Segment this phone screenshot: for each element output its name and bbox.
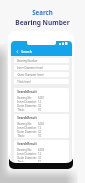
button[interactable]: Back [15,49,20,54]
staticText: 10 [38,108,41,112]
staticText: Bearing Number [15,18,70,27]
staticText: 32 [38,156,41,160]
staticText: Outer Diameter: [17,130,37,134]
staticText: 12 [38,126,41,130]
staticText: Outer Diameter: [17,156,37,160]
staticText: SearchResult [17,142,37,146]
staticText: Search [21,50,32,54]
staticText: 6203 [38,148,44,152]
staticText: Inner Diameter (mm) [17,66,43,70]
staticText: Bearing No: [17,96,32,100]
staticText: 6201 [38,96,44,100]
button[interactable]: Inner Diameter (mm) [14,65,69,70]
button[interactable]: SearchResult [14,140,69,162]
button[interactable]: SearchResult [14,88,69,112]
staticText: Inner Diameter: [17,126,37,130]
staticText: 10 [38,134,41,138]
staticText: Bearing No: [17,122,32,126]
staticText: 32 [38,130,41,134]
button[interactable]: SearchResult [14,114,69,138]
staticText: 6202 [38,122,44,126]
button[interactable]: Outer Diameter (mm) [14,72,69,77]
staticText: Outer Diameter (mm) [17,73,44,77]
staticText: 32 [38,104,41,108]
staticText: 10 [38,160,41,162]
staticText: SearchResult [17,116,37,120]
staticText: Inner Diameter: [17,152,37,156]
button[interactable]: Thick (mm) [14,79,69,84]
staticText: Thick (mm) [17,80,31,84]
staticText: SearchResult [17,90,37,94]
staticText: 12 [38,100,41,104]
staticText: Thick: [17,134,25,138]
staticText: Thick: [17,108,25,112]
staticText: Inner Diameter: [17,100,37,104]
staticText: 12 [38,152,41,156]
button[interactable]: Bearing Number [14,58,69,63]
staticText: Thick: [17,160,25,162]
staticText: Bearing Number [17,59,38,63]
staticText: Bearing No: [17,148,32,152]
staticText: Search [32,8,53,16]
staticText: Outer Diameter: [17,104,37,108]
